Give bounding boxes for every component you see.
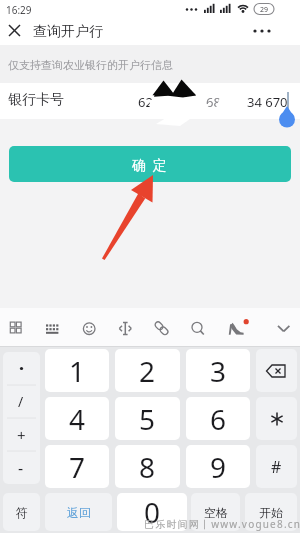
button[interactable]: 1	[45, 349, 109, 392]
button[interactable]: 2	[115, 349, 180, 392]
staticText: 6	[210, 400, 227, 438]
button[interactable]: 6	[186, 397, 250, 440]
button[interactable]: 8	[115, 445, 180, 488]
button[interactable]: 符	[3, 493, 40, 531]
staticText: 68	[206, 93, 221, 111]
button[interactable]	[110, 311, 140, 343]
staticText: 1	[69, 352, 86, 390]
staticText: 确 定	[132, 155, 169, 174]
staticText: 29	[260, 5, 269, 15]
button[interactable]	[182, 311, 212, 343]
button[interactable]	[256, 397, 297, 440]
staticText: -	[18, 457, 24, 479]
button[interactable]	[74, 311, 104, 343]
staticText: 16:29	[6, 3, 32, 17]
staticText: #	[271, 456, 282, 478]
button[interactable]: 0	[117, 493, 187, 531]
button[interactable]: 4	[45, 397, 109, 440]
staticText: 0	[144, 493, 161, 531]
staticText: 空格	[204, 505, 228, 520]
staticText: 5	[139, 400, 156, 438]
button[interactable]	[9, 25, 20, 36]
button[interactable]: 5	[115, 397, 180, 440]
staticText: 查询开户行	[33, 23, 103, 41]
staticText: 4	[69, 400, 86, 438]
button[interactable]	[256, 349, 297, 392]
staticText: 开始	[259, 505, 283, 520]
button[interactable]	[252, 27, 274, 35]
staticText: 3	[210, 352, 227, 390]
staticText: 7	[69, 448, 86, 486]
staticText: 9	[210, 448, 227, 486]
button[interactable]	[221, 311, 251, 343]
button[interactable]: #	[256, 445, 297, 488]
staticText: 8	[139, 448, 156, 486]
button[interactable]	[3, 352, 40, 484]
staticText: 34 670	[247, 93, 288, 111]
staticText: 2	[139, 352, 156, 390]
staticText: 返回	[67, 505, 91, 520]
button[interactable]: 确 定	[9, 146, 291, 182]
staticText: 符	[16, 505, 28, 520]
button[interactable]: 7	[45, 445, 109, 488]
button[interactable]	[37, 311, 67, 343]
staticText: +	[17, 425, 26, 445]
button[interactable]: 开始	[245, 493, 297, 531]
button[interactable]: 9	[186, 445, 250, 488]
staticText: 62	[138, 93, 153, 111]
staticText: /	[18, 392, 24, 411]
staticText: 仅支持查询农业银行的开户行信息	[8, 58, 173, 72]
button[interactable]	[1, 311, 31, 343]
staticText: 巴乐时间网丨www.vogue8.cn	[144, 517, 300, 531]
staticText: 银行卡号	[8, 91, 64, 109]
button[interactable]	[0, 83, 300, 119]
button[interactable]	[268, 311, 298, 343]
button[interactable]: 3	[186, 349, 250, 392]
button[interactable]: 空格	[191, 493, 240, 531]
button[interactable]: 返回	[45, 493, 112, 531]
button[interactable]	[146, 311, 176, 343]
